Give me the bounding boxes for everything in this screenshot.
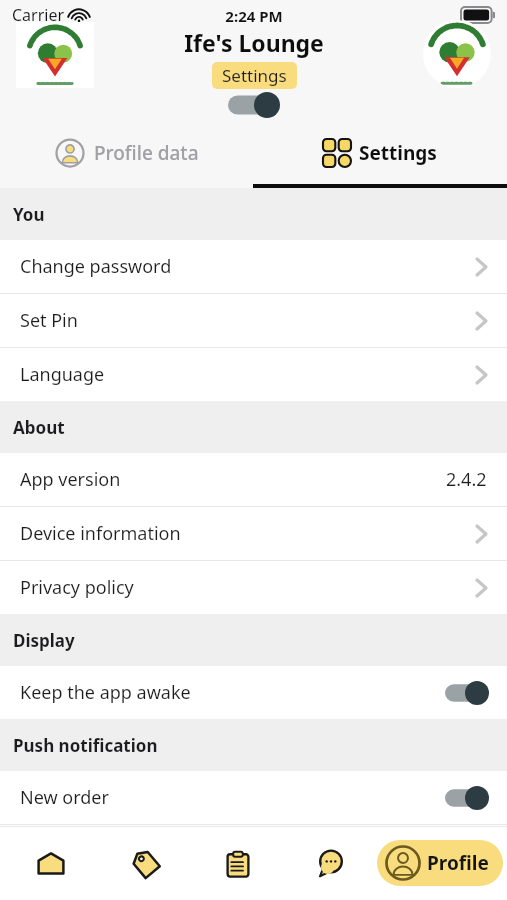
staticText: Settings (359, 140, 437, 166)
staticText: Set Pin (20, 308, 78, 333)
staticText: About (13, 416, 65, 439)
button[interactable]: Set Pin (0, 294, 507, 348)
staticText: You (13, 203, 45, 226)
button[interactable]: Keep the app awake (0, 666, 507, 719)
button[interactable]: Chat (284, 826, 377, 900)
staticText: Ife's Lounge (184, 27, 324, 58)
staticText: New order (20, 785, 109, 810)
staticText: Language (20, 362, 105, 387)
button[interactable]: Settings (253, 122, 507, 184)
staticText: Profile data (94, 140, 199, 166)
staticText: Device information (20, 521, 181, 546)
staticText: Display (13, 629, 75, 652)
staticText: Change password (20, 254, 172, 279)
button[interactable]: Change password (0, 240, 507, 294)
button[interactable]: Profile (377, 840, 503, 886)
button[interactable]: App version (0, 453, 507, 507)
button[interactable]: Home (4, 826, 98, 900)
staticText: 2:24 PM (225, 6, 283, 26)
button[interactable]: Offers (98, 826, 191, 900)
staticText: Push notification (13, 734, 158, 757)
button[interactable]: Language (0, 348, 507, 401)
button[interactable]: Privacy policy (0, 561, 507, 614)
staticText: App version (20, 467, 121, 492)
staticText: Profile (427, 850, 489, 876)
button[interactable]: New order (0, 771, 507, 825)
staticText: Keep the app awake (20, 680, 191, 705)
button[interactable]: Toggle (226, 92, 282, 118)
button[interactable]: Settings (212, 62, 297, 89)
button[interactable]: Device information (0, 507, 507, 561)
button[interactable]: Profile data (0, 122, 253, 184)
staticText: Settings (222, 64, 287, 87)
staticText: 2.4.2 (446, 467, 487, 492)
button[interactable]: Orders (191, 826, 284, 900)
staticText: Privacy policy (20, 575, 134, 600)
staticText: Carrier (12, 4, 65, 26)
